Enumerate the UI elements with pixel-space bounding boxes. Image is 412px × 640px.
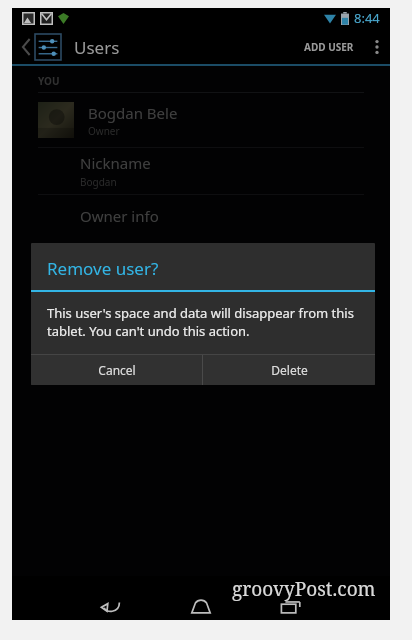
- button[interactable]: Nickname: [12, 148, 390, 194]
- button[interactable]: Bogdan Bele: [12, 93, 390, 147]
- staticText: Users: [74, 36, 120, 59]
- button[interactable]: Cancel: [31, 355, 202, 385]
- staticText: 8:44: [354, 9, 380, 27]
- staticText: Felicia: [88, 289, 132, 309]
- staticText: OTHER USERS: [38, 253, 105, 267]
- staticText: YOU: [38, 74, 60, 88]
- staticText: This user's space and data will disappea…: [47, 304, 359, 340]
- staticText: Bogdan Bele: [88, 103, 178, 123]
- button[interactable]: Owner info: [12, 195, 390, 237]
- button[interactable]: Back: [66, 594, 156, 620]
- staticText: Owner: [88, 124, 120, 138]
- button[interactable]: Home: [156, 594, 246, 620]
- button[interactable]: More options: [364, 31, 390, 63]
- button[interactable]: Navigate up: [18, 30, 65, 64]
- staticText: Bogdan: [80, 175, 117, 189]
- button[interactable]: Delete: [203, 355, 375, 385]
- staticText: Cancel: [98, 362, 136, 378]
- staticText: groovyPost.com: [232, 576, 376, 602]
- staticText: ADD USER: [304, 40, 354, 54]
- button[interactable]: ADD USER: [294, 30, 364, 64]
- button[interactable]: User settings: [344, 285, 372, 313]
- staticText: Owner info: [80, 206, 159, 226]
- staticText: Delete: [271, 362, 308, 378]
- staticText: Nickname: [80, 153, 151, 173]
- button[interactable]: Recent apps: [246, 594, 336, 620]
- staticText: Remove user?: [47, 257, 159, 280]
- button[interactable]: Felicia: [12, 272, 390, 326]
